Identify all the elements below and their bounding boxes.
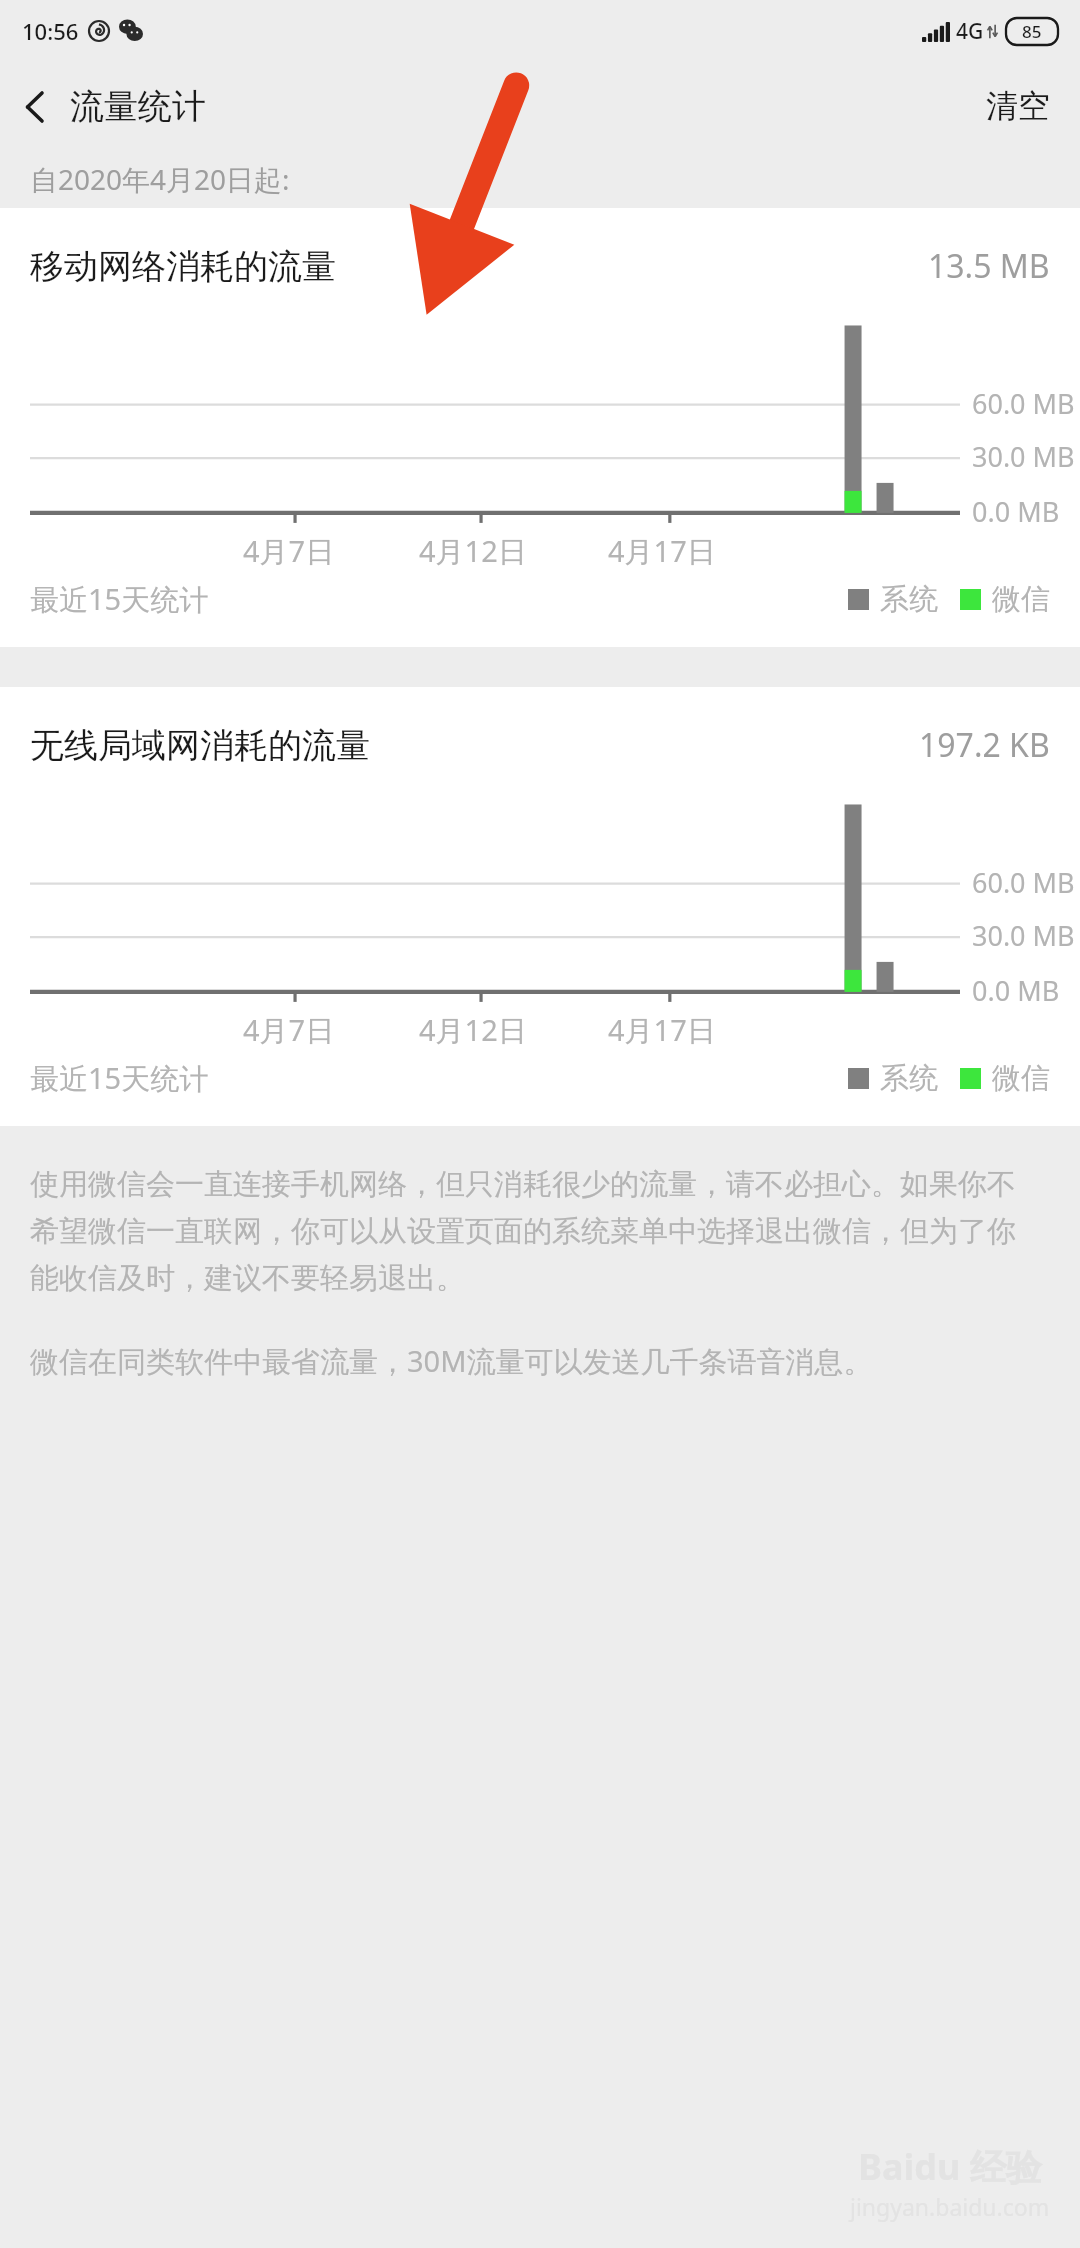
staticText: 4G xyxy=(956,17,984,46)
staticText: 微信在同类软件中最省流量，30M流量可以发送几千条语音消息。 xyxy=(30,1341,873,1381)
staticText: Baidu 经验 xyxy=(858,2142,1042,2191)
staticText: 系统 xyxy=(880,1060,938,1097)
staticText: 微信 xyxy=(992,581,1050,618)
button[interactable]: 无线局域网消耗的流量 xyxy=(0,687,1080,793)
staticText: 4月12日 xyxy=(419,531,527,571)
staticText: 微信 xyxy=(992,1060,1050,1097)
staticText: 自2020年4月20日起: xyxy=(30,160,290,198)
staticText: 最近15天统计 xyxy=(30,1058,209,1098)
staticText: 清空 xyxy=(986,86,1050,126)
staticText: 无线局域网消耗的流量 xyxy=(30,724,370,767)
button[interactable]: 清空 xyxy=(956,70,1080,142)
staticText: 0.0 MB xyxy=(972,972,1060,1009)
staticText: 30.0 MB xyxy=(972,438,1075,475)
staticText: 4月7日 xyxy=(243,531,335,571)
staticText: 最近15天统计 xyxy=(30,579,209,619)
staticText: 60.0 MB xyxy=(972,864,1075,901)
staticText: 4月12日 xyxy=(419,1010,527,1050)
staticText: 流量统计 xyxy=(70,85,206,128)
button[interactable]: 移动网络消耗的流量 xyxy=(0,208,1080,314)
staticText: 13.5 MB xyxy=(928,244,1050,288)
staticText: 0.0 MB xyxy=(972,493,1060,530)
staticText: 4月17日 xyxy=(608,531,716,571)
staticText: 10:56 xyxy=(22,16,79,46)
staticText: 移动网络消耗的流量 xyxy=(30,245,336,288)
staticText: 30.0 MB xyxy=(972,917,1075,954)
other: Back xyxy=(24,88,46,126)
staticText: 系统 xyxy=(880,581,938,618)
staticText: 4月7日 xyxy=(243,1010,335,1050)
staticText: 使用微信会一直连接手机网络，但只消耗很少的流量，请不必担心。如果你不希望微信一直… xyxy=(30,1166,1038,1297)
staticText: jingyan.baidu.com xyxy=(850,2191,1050,2222)
staticText: 60.0 MB xyxy=(972,385,1075,422)
staticText: 85 xyxy=(1022,20,1042,43)
staticText: 197.2 KB xyxy=(919,723,1050,767)
staticText: 4月17日 xyxy=(608,1010,716,1050)
button[interactable]: Back xyxy=(0,73,224,140)
